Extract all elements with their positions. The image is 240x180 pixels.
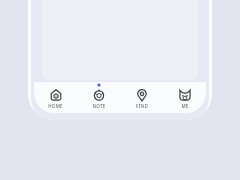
button[interactable]: ME — [163, 82, 206, 113]
staticText: NOTE — [92, 103, 106, 109]
button[interactable]: HOME — [34, 82, 77, 113]
staticText: HOME — [48, 103, 63, 109]
staticText: FIND — [136, 103, 148, 109]
button[interactable]: FIND — [120, 82, 163, 113]
staticText: ME — [181, 103, 189, 109]
button[interactable]: NOTE — [77, 82, 120, 113]
